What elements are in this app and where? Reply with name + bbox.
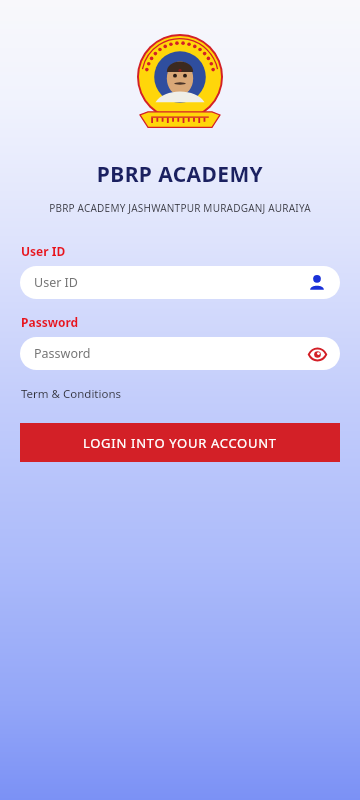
staticText: Term & Conditions — [21, 386, 122, 402]
staticText: LOGIN INTO YOUR ACCOUNT — [83, 434, 277, 452]
button[interactable]: User ID — [20, 266, 340, 299]
staticText: User ID — [21, 243, 66, 259]
staticText: Password — [21, 314, 79, 330]
staticText: PBRP ACADEMY — [0, 160, 360, 189]
button[interactable]: Toggle password visibility — [306, 343, 328, 365]
button[interactable]: LOGIN INTO YOUR ACCOUNT — [20, 423, 340, 462]
button[interactable]: Password — [20, 337, 340, 370]
button[interactable]: User account — [306, 272, 328, 294]
button[interactable]: Term & Conditions — [21, 386, 122, 402]
staticText: User ID — [34, 274, 78, 291]
staticText: PBRP ACADEMY JASHWANTPUR MURADGANJ AURAI… — [0, 201, 360, 215]
staticText: Password — [34, 345, 91, 362]
